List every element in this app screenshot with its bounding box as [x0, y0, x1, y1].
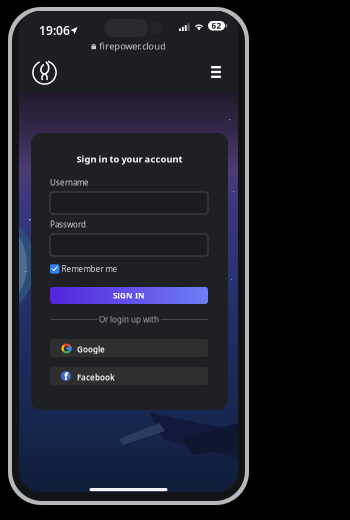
button[interactable]: Google [50, 339, 208, 357]
button[interactable]: Firepower home [31, 59, 58, 86]
staticText: Google [77, 344, 105, 355]
staticText: Remember me [61, 264, 117, 274]
button[interactable]: f [50, 367, 208, 385]
staticText: firepower.cloud [99, 40, 166, 52]
staticText: Facebook [77, 372, 115, 383]
button[interactable]: Remember me [50, 263, 117, 275]
button[interactable]: SIGN IN [50, 287, 208, 304]
staticText: 19:06 [39, 22, 70, 38]
staticText: Password [50, 219, 86, 230]
staticText: Sign in to your account [76, 153, 182, 165]
staticText: Username [50, 177, 89, 188]
button[interactable]: Menu [205, 62, 227, 82]
staticText: SIGN IN [113, 290, 145, 301]
staticText: f [64, 369, 68, 383]
staticText: Or login up with [99, 314, 159, 325]
staticText: 62 [211, 20, 221, 31]
